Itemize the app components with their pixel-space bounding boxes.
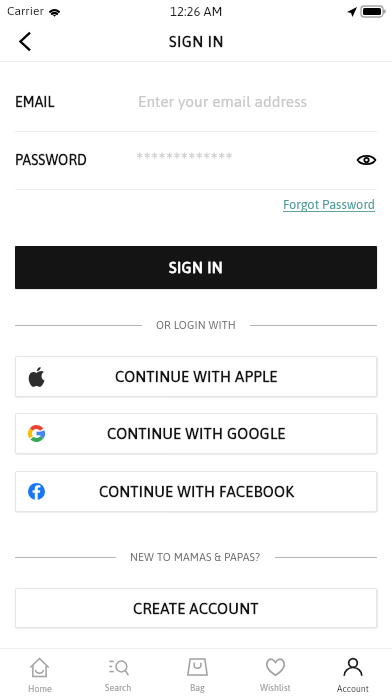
button[interactable]: Back [3, 22, 47, 61]
button[interactable]: Forgot Password [283, 197, 376, 212]
staticText: PASSWORD [15, 152, 138, 168]
button[interactable]: EMAIL [15, 73, 377, 131]
staticText: CONTINUE WITH APPLE [115, 368, 278, 385]
staticText: SIGN IN [169, 33, 224, 50]
staticText: Wishlist [260, 683, 291, 693]
staticText: OR LOGIN WITH [156, 319, 236, 331]
button[interactable]: Bag [158, 652, 236, 696]
staticText: Search [105, 683, 132, 693]
button[interactable]: CONTINUE WITH FACEBOOK [15, 471, 377, 512]
button[interactable]: SIGN IN [15, 246, 377, 289]
staticText: 12:26 AM [170, 4, 223, 19]
button[interactable]: Show password [351, 145, 381, 175]
button[interactable]: PASSWORD [15, 131, 377, 189]
staticText: CONTINUE WITH GOOGLE [107, 425, 286, 442]
staticText: CREATE ACCOUNT [133, 600, 259, 617]
button[interactable]: Search [79, 652, 158, 696]
button[interactable]: Home [0, 652, 79, 696]
staticText: EMAIL [15, 94, 138, 110]
staticText: Forgot Password [283, 197, 376, 212]
button[interactable]: CREATE ACCOUNT [15, 588, 377, 628]
staticText: Home [28, 684, 52, 694]
button[interactable]: CONTINUE WITH APPLE [15, 356, 377, 397]
button[interactable]: Wishlist [236, 652, 314, 696]
staticText: Account [337, 684, 369, 694]
staticText: CONTINUE WITH FACEBOOK [99, 483, 294, 500]
button[interactable]: CONTINUE WITH GOOGLE [15, 413, 377, 454]
staticText: SIGN IN [169, 259, 224, 276]
button[interactable]: Account [314, 652, 392, 696]
staticText: Enter your email address [138, 93, 377, 111]
staticText: Carrier [7, 4, 44, 18]
staticText: Bag [190, 683, 205, 693]
staticText: NEW TO MAMAS & PAPAS? [130, 551, 261, 563]
